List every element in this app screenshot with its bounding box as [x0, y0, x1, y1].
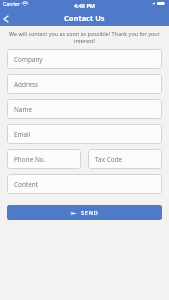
staticText: Company [14, 55, 43, 64]
button[interactable]: Address [7, 74, 162, 94]
staticText: SEND [81, 209, 99, 217]
button[interactable]: SEND [7, 205, 162, 220]
staticText: Tax Code [95, 155, 123, 164]
staticText: interest! [0, 37, 169, 44]
button[interactable]: Name [7, 99, 162, 119]
staticText: Name [14, 105, 33, 114]
button[interactable]: Back [0, 11, 14, 26]
staticText: Content [14, 180, 39, 189]
staticText: 4:46 PM [74, 2, 96, 9]
button[interactable]: Email [7, 124, 162, 144]
staticText: Email [14, 130, 31, 139]
staticText: Address [14, 80, 39, 89]
staticText: Phone No. [14, 155, 46, 164]
staticText: We will contact you as soon as possible!… [0, 30, 169, 37]
staticText: Contact Us [64, 13, 105, 23]
staticText: Carrier [3, 0, 20, 7]
button[interactable]: Phone No. [7, 149, 81, 169]
button[interactable]: Company [7, 49, 162, 69]
button[interactable]: Content [7, 174, 162, 194]
button[interactable]: Tax Code [88, 149, 162, 169]
